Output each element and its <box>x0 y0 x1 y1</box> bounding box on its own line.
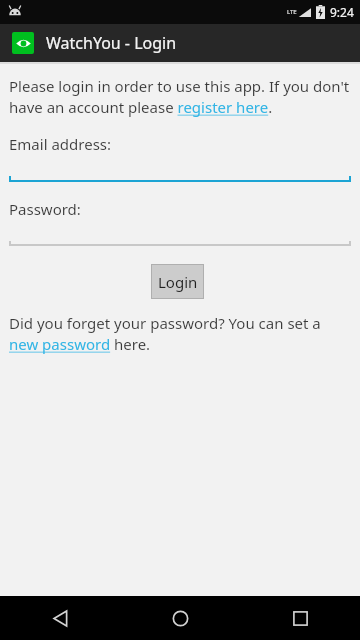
staticText: Password: <box>9 199 81 219</box>
button[interactable]: Login <box>152 265 203 298</box>
staticText: LTE <box>287 8 297 16</box>
button[interactable]: Back <box>0 596 120 640</box>
staticText: 9:24 <box>330 4 354 20</box>
button[interactable]: Recent apps <box>240 596 360 640</box>
staticText: Login <box>158 272 198 292</box>
button[interactable] <box>9 176 351 182</box>
button[interactable]: Did you forget your password? You can se… <box>9 313 351 355</box>
button[interactable]: Home <box>120 596 240 640</box>
staticText: WatchYou - Login <box>46 32 177 54</box>
other: WatchYou app icon <box>12 32 34 54</box>
staticText: Email address: <box>9 134 112 154</box>
button[interactable]: Please login in order to use this app. I… <box>9 76 351 118</box>
button[interactable] <box>9 241 351 246</box>
